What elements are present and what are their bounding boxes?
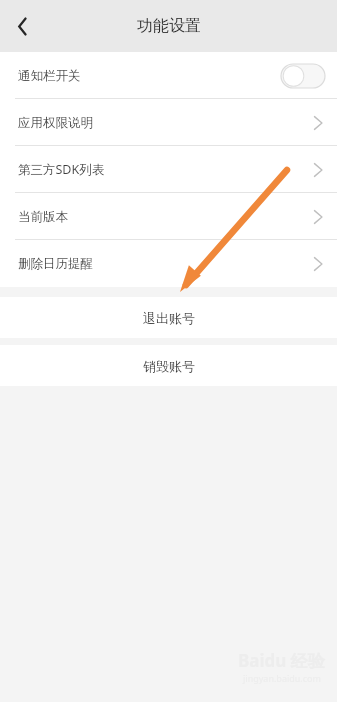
button[interactable]: Back: [0, 4, 44, 48]
staticText: 销毁账号: [143, 358, 195, 374]
button[interactable]: 应用权限说明: [0, 99, 337, 146]
button[interactable]: 第三方SDK列表: [0, 146, 337, 193]
staticText: 通知栏开关: [18, 68, 81, 84]
staticText: 功能设置: [137, 16, 201, 36]
staticText: 应用权限说明: [18, 115, 93, 131]
button[interactable]: 删除日历提醒: [0, 240, 337, 287]
button[interactable]: 当前版本: [0, 193, 337, 240]
staticText: 退出账号: [143, 310, 195, 326]
staticText: 当前版本: [18, 209, 68, 225]
button[interactable]: 退出账号: [0, 297, 337, 338]
staticText: 删除日历提醒: [18, 256, 93, 272]
staticText: 第三方SDK列表: [18, 161, 105, 178]
button[interactable]: Notification bar switch: [281, 64, 325, 88]
button[interactable]: 销毁账号: [0, 345, 337, 386]
button[interactable]: 通知栏开关: [0, 52, 337, 99]
